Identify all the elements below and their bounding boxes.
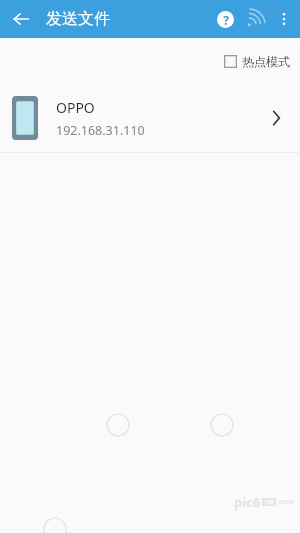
staticText: 热点模式 bbox=[242, 54, 290, 69]
staticText: pic6 bbox=[234, 493, 261, 511]
other: Open device bbox=[258, 100, 294, 136]
button[interactable]: Back bbox=[6, 4, 36, 34]
button[interactable]: Help bbox=[210, 4, 240, 34]
staticText: 192.168.31.110 bbox=[56, 122, 145, 139]
staticText: ? bbox=[223, 12, 229, 28]
button[interactable]: Scan bbox=[240, 4, 270, 34]
staticText: .com bbox=[277, 497, 294, 507]
staticText: OPPO bbox=[56, 98, 95, 117]
staticText: 下载 bbox=[264, 499, 274, 505]
button[interactable]: 热点模式 bbox=[222, 50, 292, 73]
staticText: 发送文件 bbox=[46, 9, 110, 29]
button[interactable]: More options bbox=[270, 5, 298, 33]
button[interactable]: OPPO bbox=[0, 84, 300, 152]
